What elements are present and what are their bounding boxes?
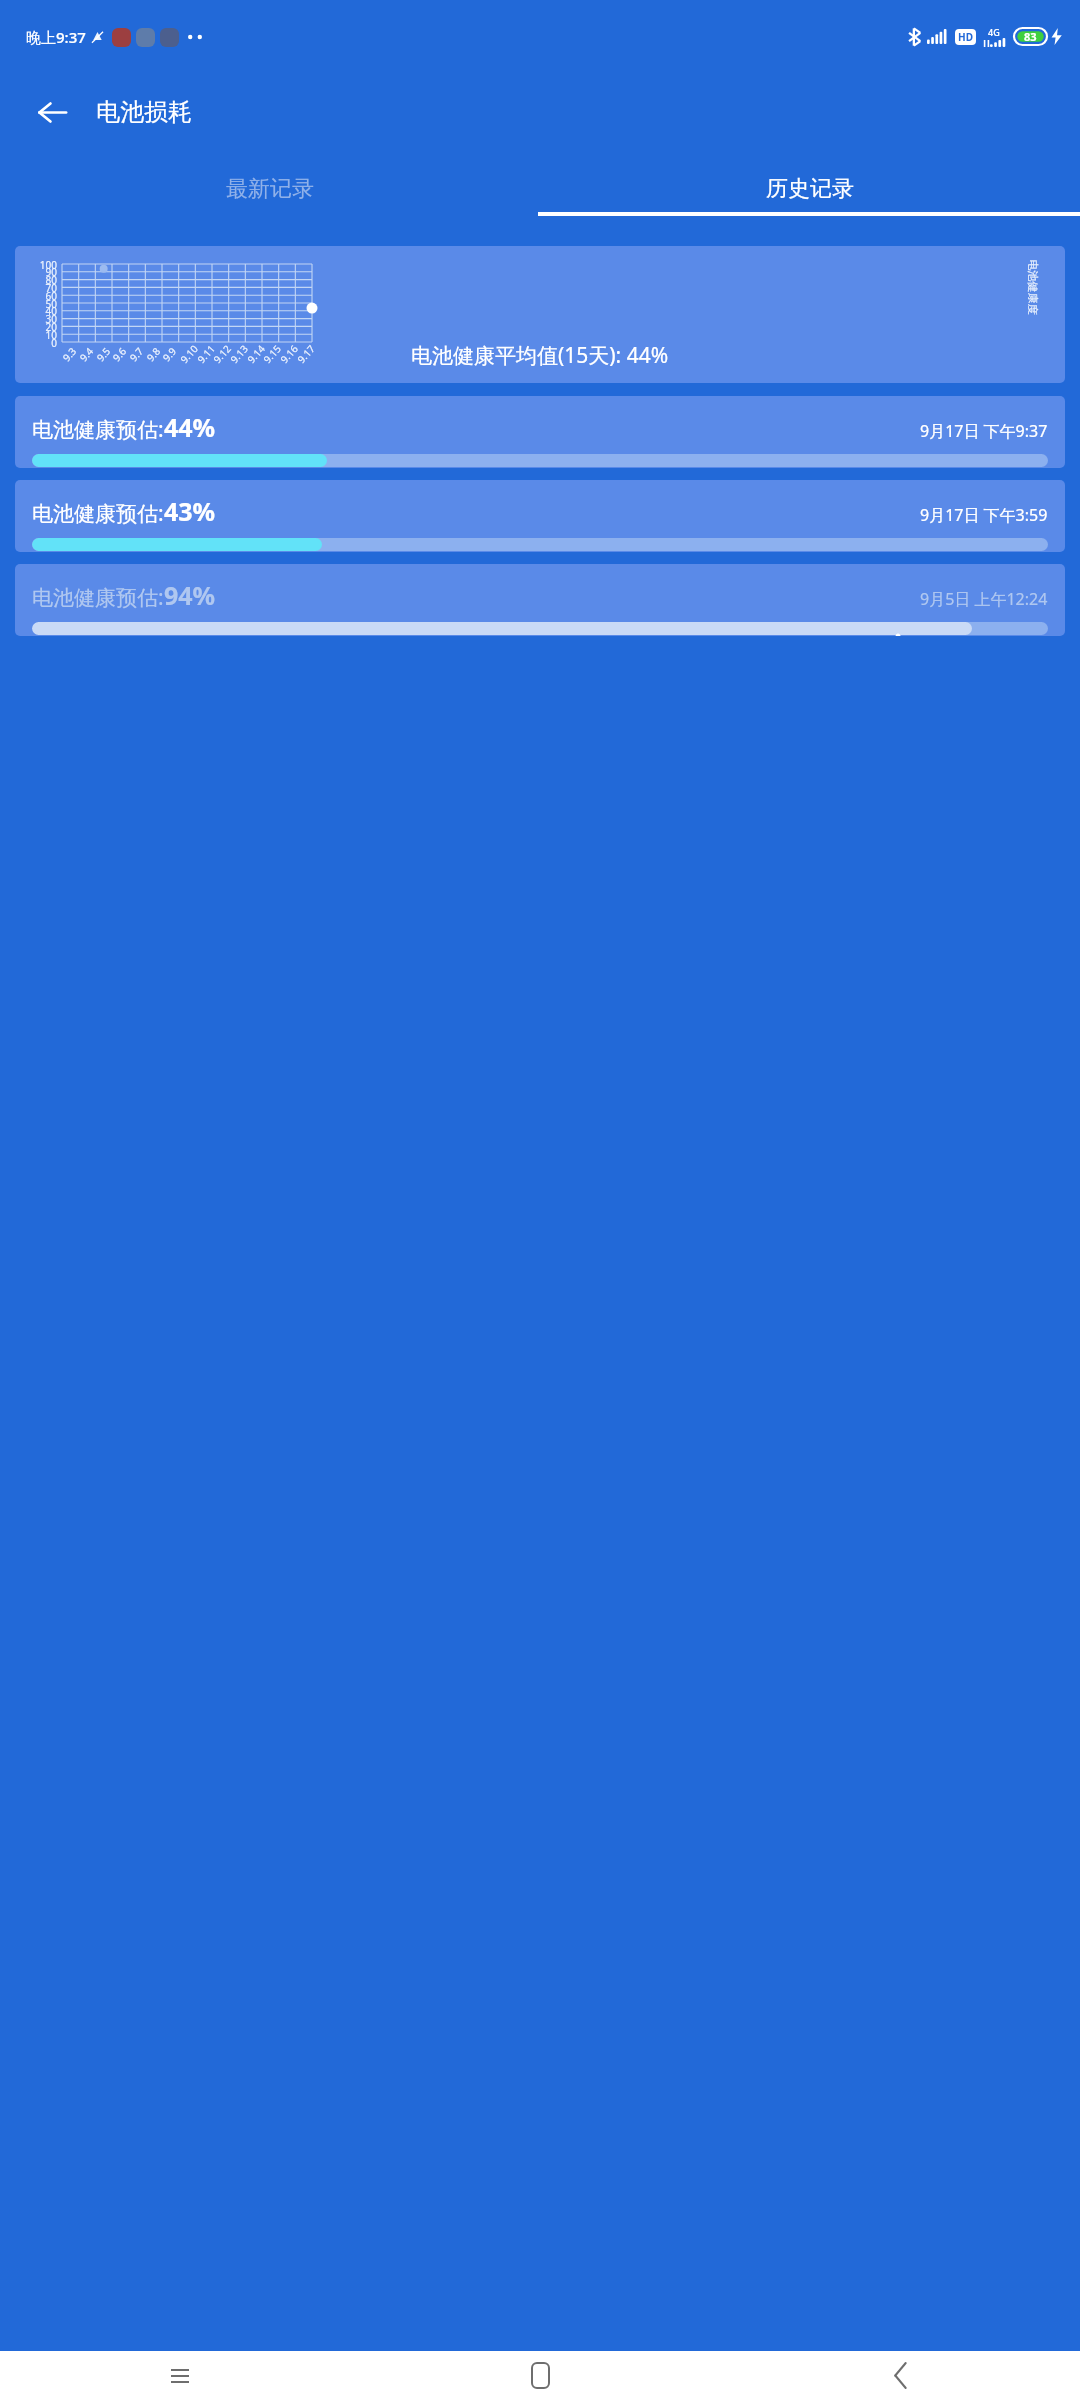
staticText: 9.16 <box>277 342 301 366</box>
staticText: 0 <box>29 336 57 350</box>
staticText: 100 <box>29 258 57 272</box>
staticText: 9.15 <box>260 342 284 366</box>
button[interactable]: 最新记录 <box>0 150 540 227</box>
staticText: 9.3 <box>59 344 80 364</box>
staticText: 9.7 <box>126 344 147 364</box>
staticText: 30 <box>29 312 57 326</box>
staticText: 晚上9:37 <box>26 27 86 47</box>
staticText: 历史记录 <box>766 175 854 203</box>
button[interactable]: Back <box>720 2351 1080 2400</box>
staticText: 80 <box>29 273 57 287</box>
staticText: 20 <box>29 320 57 334</box>
staticText: 电池健康预估: <box>32 583 164 612</box>
staticText: 4G <box>988 26 1000 38</box>
staticText: HD <box>958 30 973 44</box>
staticText: 94% <box>164 578 216 612</box>
staticText: 电池健康度 <box>1025 259 1039 314</box>
staticText: 9.17 <box>294 342 318 366</box>
staticText: 电池损耗 <box>96 97 192 127</box>
button[interactable]: 历史记录 <box>540 150 1080 227</box>
button[interactable]: Home <box>360 2351 720 2400</box>
staticText: 9.13 <box>227 342 251 366</box>
staticText: 10 <box>29 328 57 342</box>
button[interactable]: 电池健康预估: <box>15 480 1065 552</box>
staticText: 最新记录 <box>226 175 314 203</box>
staticText: 9.12 <box>210 342 234 366</box>
staticText: 9.6 <box>109 344 130 364</box>
button[interactable]: 电池健康预估: <box>15 564 1065 636</box>
staticText: 50 <box>29 297 57 311</box>
staticText: 电池健康平均值(15天): 44% <box>411 341 669 370</box>
button[interactable]: Recents <box>0 2351 360 2400</box>
staticText: 43% <box>164 494 216 528</box>
button[interactable]: 电池健康预估: <box>15 396 1065 468</box>
staticText: 9.5 <box>93 344 114 364</box>
staticText: 电池健康预估: <box>32 499 164 528</box>
button[interactable]: 100 <box>15 246 1065 383</box>
staticText: 9月17日 下午3:59 <box>920 504 1048 526</box>
staticText: 电池健康预估: <box>32 415 164 444</box>
staticText: 9月17日 下午9:37 <box>920 420 1048 442</box>
staticText: 9月5日 上午12:24 <box>920 588 1048 610</box>
staticText: 90 <box>29 265 57 279</box>
staticText: 83 <box>1024 29 1037 44</box>
staticText: 9.8 <box>143 344 164 364</box>
staticText: 9.11 <box>194 342 218 366</box>
staticText: 40 <box>29 304 57 318</box>
staticText: 60 <box>29 289 57 303</box>
staticText: 70 <box>29 281 57 295</box>
staticText: 44% <box>164 410 216 444</box>
staticText: 9.10 <box>177 342 201 366</box>
staticText: 9.14 <box>244 342 268 366</box>
button[interactable]: Back <box>26 86 78 138</box>
staticText: 9.9 <box>159 344 180 364</box>
staticText: 9.4 <box>76 344 97 364</box>
